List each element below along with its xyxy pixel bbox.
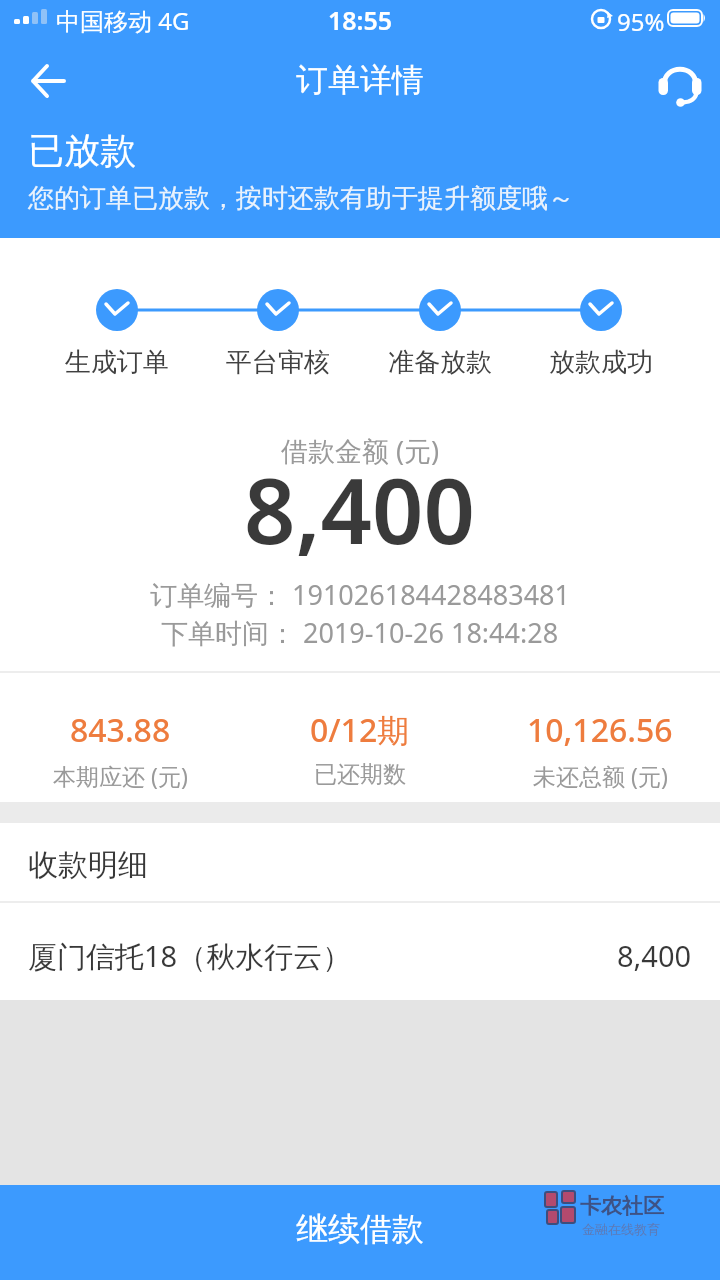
- button[interactable]: 继续借款: [0, 1185, 720, 1280]
- staticText: 95%: [617, 5, 665, 38]
- staticText: 生成订单: [65, 346, 169, 379]
- staticText: 订单编号： 191026184428483481: [150, 576, 571, 613]
- staticText: 下单时间： 2019-10-26 18:44:28: [161, 614, 559, 651]
- staticText: 平台审核: [226, 346, 330, 379]
- staticText: 8,400: [244, 448, 476, 571]
- staticText: 借款金额 (元): [281, 432, 440, 469]
- staticText: 已还期数: [314, 760, 406, 789]
- staticText: 订单详情: [296, 60, 424, 100]
- staticText: 0/12期: [310, 708, 410, 752]
- staticText: 继续借款: [296, 1209, 424, 1249]
- staticText: 本期应还 (元): [53, 760, 188, 791]
- button[interactable]: 厦门信托18（秋水行云）: [28, 936, 692, 976]
- staticText: 放款成功: [549, 346, 653, 379]
- staticText: 已放款: [28, 128, 136, 173]
- staticText: 8,400: [617, 936, 692, 975]
- staticText: 10,126.56: [527, 708, 673, 752]
- staticText: 金融在线教育: [582, 1221, 660, 1237]
- staticText: 准备放款: [388, 346, 492, 379]
- staticText: 卡农社区: [580, 1193, 664, 1219]
- staticText: 收款明细: [28, 846, 148, 884]
- staticText: 您的订单已放款，按时还款有助于提升额度哦～: [28, 182, 574, 215]
- button[interactable]: [657, 59, 703, 105]
- staticText: 18:55: [328, 3, 393, 37]
- staticText: 未还总额 (元): [533, 760, 668, 791]
- staticText: 厦门信托18（秋水行云）: [28, 936, 352, 976]
- staticText: 843.88: [70, 708, 171, 752]
- staticText: 中国移动 4G: [56, 4, 190, 37]
- button[interactable]: [20, 53, 76, 109]
